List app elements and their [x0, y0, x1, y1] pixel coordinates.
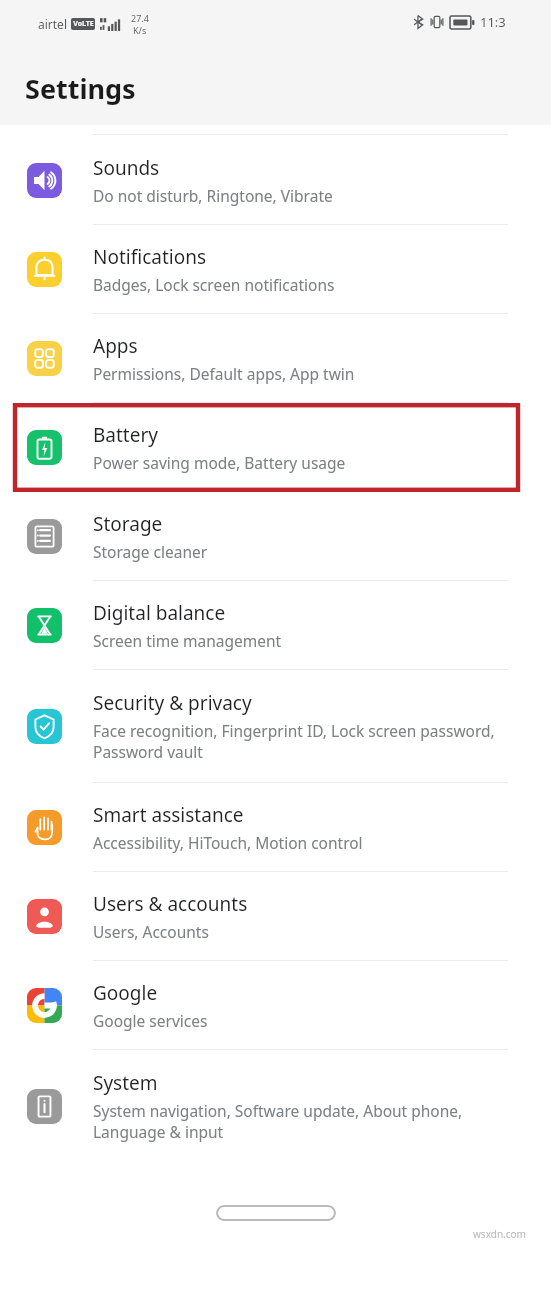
staticText: VoLTE — [73, 19, 94, 29]
staticText: Smart assistance — [93, 802, 244, 828]
staticText: Power saving mode, Battery usage — [93, 452, 346, 473]
staticText: Accessibility, HiTouch, Motion control — [93, 832, 363, 853]
staticText: Do not disturb, Ringtone, Vibrate — [93, 185, 333, 206]
button[interactable]: Sounds — [0, 136, 551, 225]
button[interactable]: Battery — [0, 403, 551, 492]
staticText: Screen time management — [93, 630, 282, 651]
button[interactable]: Digital balance — [0, 581, 551, 670]
staticText: Notifications — [93, 244, 207, 270]
staticText: Storage cleaner — [93, 541, 208, 562]
button[interactable]: Apps — [0, 314, 551, 403]
staticText: Battery — [93, 422, 158, 448]
button[interactable]: Smart assistance — [0, 783, 551, 872]
button[interactable]: System — [0, 1050, 551, 1163]
button[interactable]: Storage — [0, 492, 551, 581]
staticText: 11:3 — [480, 13, 506, 31]
staticText: Face recognition, Fingerprint ID, Lock s… — [93, 720, 523, 763]
staticText: wsxdn.com — [473, 1227, 526, 1241]
staticText: Badges, Lock screen notifications — [93, 274, 335, 295]
staticText: System — [93, 1070, 158, 1096]
staticText: 27.4 — [131, 12, 149, 24]
staticText: Google services — [93, 1010, 208, 1031]
button[interactable]: Notifications — [0, 225, 551, 314]
staticText: Permissions, Default apps, App twin — [93, 363, 355, 384]
staticText: Apps — [93, 333, 138, 359]
staticText: Storage — [93, 511, 163, 537]
staticText: Digital balance — [93, 600, 226, 626]
staticText: System navigation, Software update, Abou… — [93, 1100, 523, 1143]
staticText: Users, Accounts — [93, 921, 209, 942]
button[interactable]: Security & privacy — [0, 670, 551, 783]
staticText: K/s — [133, 24, 147, 36]
staticText: Settings — [25, 70, 136, 107]
staticText: Sounds — [93, 155, 160, 181]
staticText: Google — [93, 980, 158, 1006]
staticText: airtel — [38, 16, 67, 32]
staticText: Users & accounts — [93, 891, 248, 917]
button[interactable]: Google — [0, 961, 551, 1050]
staticText: Security & privacy — [93, 690, 252, 716]
button[interactable]: Users & accounts — [0, 872, 551, 961]
